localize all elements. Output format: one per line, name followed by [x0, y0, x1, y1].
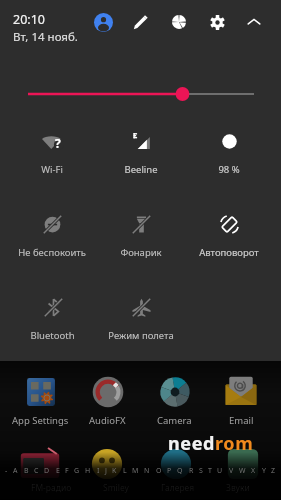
- staticText: Q: [177, 466, 183, 476]
- button[interactable]: App: [158, 446, 194, 482]
- staticText: N: [144, 466, 150, 476]
- staticText: 20:10: [13, 11, 45, 28]
- staticText: T: [208, 466, 212, 476]
- staticText: -: [5, 466, 8, 476]
- staticText: P: [167, 466, 172, 476]
- staticText: V: [229, 466, 234, 476]
- button[interactable]: Автоповорот: [185, 204, 273, 276]
- staticText: Wi-Fi: [41, 163, 63, 176]
- staticText: M: [132, 466, 139, 476]
- staticText: D: [44, 466, 50, 476]
- staticText: Вт, 14 нояб.: [13, 29, 78, 45]
- staticText: Не беспокоить: [18, 246, 86, 259]
- staticText: App Settings: [12, 414, 69, 427]
- button[interactable]: Не беспокоить: [8, 204, 96, 276]
- staticText: C: [34, 466, 39, 476]
- staticText: 98 %: [218, 163, 240, 176]
- staticText: Фонарик: [120, 246, 162, 259]
- staticText: I: [97, 466, 100, 476]
- staticText: O: [156, 466, 162, 476]
- button[interactable]: ?: [8, 121, 96, 193]
- button[interactable]: App Settings: [7, 371, 73, 429]
- staticText: X: [251, 466, 256, 476]
- button[interactable]: Фонарик: [97, 204, 185, 276]
- button[interactable]: AudioFX: [74, 371, 140, 429]
- staticText: G: [74, 466, 80, 476]
- button[interactable]: Alphabet index: [5, 466, 276, 476]
- staticText: Bluetooth: [30, 329, 75, 342]
- staticText: Галерея: [161, 482, 195, 494]
- button[interactable]: Bluetooth: [8, 287, 96, 359]
- staticText: H: [85, 466, 91, 476]
- staticText: FM-радио: [31, 482, 72, 494]
- staticText: A: [13, 466, 18, 476]
- staticText: U: [217, 466, 223, 476]
- staticText: Email: [229, 414, 254, 427]
- button[interactable]: App: [89, 446, 125, 482]
- staticText: need: [168, 431, 215, 456]
- button[interactable]: Settings: [200, 5, 234, 39]
- staticText: ?: [55, 135, 61, 151]
- staticText: J: [105, 466, 107, 476]
- staticText: Y: [262, 466, 266, 476]
- staticText: AudioFX: [89, 414, 126, 427]
- staticText: R: [189, 466, 194, 476]
- button[interactable]: Account: [86, 5, 120, 39]
- button[interactable]: 98 %: [185, 121, 273, 193]
- staticText: Camera: [157, 414, 192, 427]
- button[interactable]: Data usage: [162, 5, 196, 39]
- staticText: Автоповорот: [199, 246, 259, 259]
- button[interactable]: Camera: [141, 371, 207, 429]
- button[interactable]: Режим полета: [97, 287, 185, 359]
- button[interactable]: App: [20, 446, 60, 486]
- button[interactable]: Email: [208, 371, 274, 429]
- staticText: L: [123, 466, 127, 476]
- button[interactable]: Beeline: [97, 121, 185, 193]
- staticText: rom: [215, 431, 254, 456]
- staticText: Звуки: [226, 482, 250, 494]
- staticText: Z: [271, 466, 276, 476]
- staticText: S: [199, 466, 203, 476]
- staticText: Beeline: [124, 163, 158, 176]
- staticText: W: [239, 466, 246, 476]
- button[interactable]: Collapse panel: [237, 5, 271, 39]
- button[interactable]: App: [225, 446, 261, 482]
- staticText: B: [24, 466, 29, 476]
- staticText: Smiley: [103, 482, 129, 494]
- staticText: E: [56, 466, 60, 476]
- button[interactable]: Brightness: [0, 80, 281, 108]
- button[interactable]: Edit: [124, 5, 158, 39]
- staticText: K: [112, 466, 117, 476]
- staticText: F: [65, 466, 69, 476]
- staticText: Режим полета: [108, 329, 174, 342]
